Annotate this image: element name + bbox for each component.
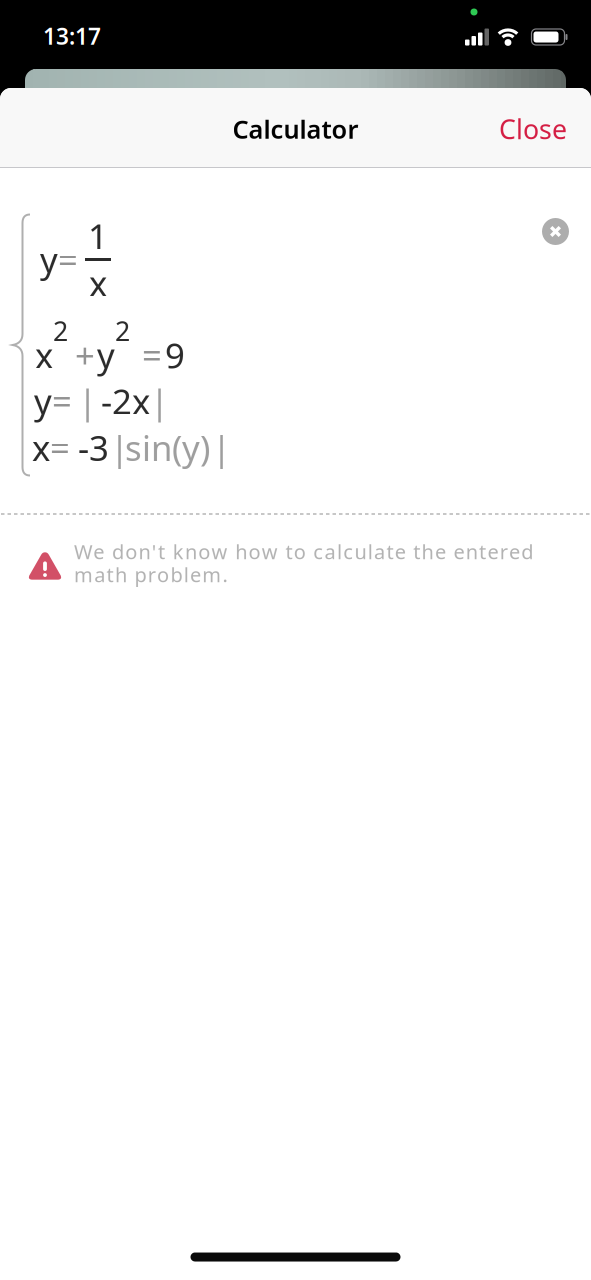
staticText: 1 xyxy=(88,213,108,259)
staticText: 13:17 xyxy=(43,21,101,51)
staticText: 9 xyxy=(165,332,185,378)
staticText: sin(y) xyxy=(125,424,210,470)
staticText: -2x xyxy=(101,378,150,424)
staticText: = xyxy=(58,236,78,282)
staticText: = xyxy=(52,378,72,424)
staticText: x xyxy=(89,260,107,306)
staticText: 2 xyxy=(53,313,68,349)
button[interactable]: Clear xyxy=(542,218,569,245)
staticText: | xyxy=(110,424,129,470)
staticText: -3 xyxy=(78,424,109,470)
staticText: y xyxy=(97,332,115,378)
staticText: math problem. xyxy=(74,561,228,588)
staticText: Close xyxy=(499,111,567,147)
button[interactable]: Close xyxy=(487,103,579,155)
staticText: | xyxy=(212,424,231,470)
staticText: Calculator xyxy=(232,112,358,146)
staticText: x xyxy=(32,424,50,470)
staticText: x xyxy=(35,332,53,378)
staticText: y xyxy=(40,236,58,282)
staticText: y xyxy=(34,378,52,424)
staticText: = xyxy=(142,332,162,378)
staticText: We don't know how to calculate the enter… xyxy=(74,538,533,565)
staticText: = xyxy=(50,424,70,470)
staticText: + xyxy=(75,332,95,378)
staticText: | xyxy=(150,378,169,424)
staticText: 2 xyxy=(115,313,130,349)
staticText: | xyxy=(78,378,97,424)
